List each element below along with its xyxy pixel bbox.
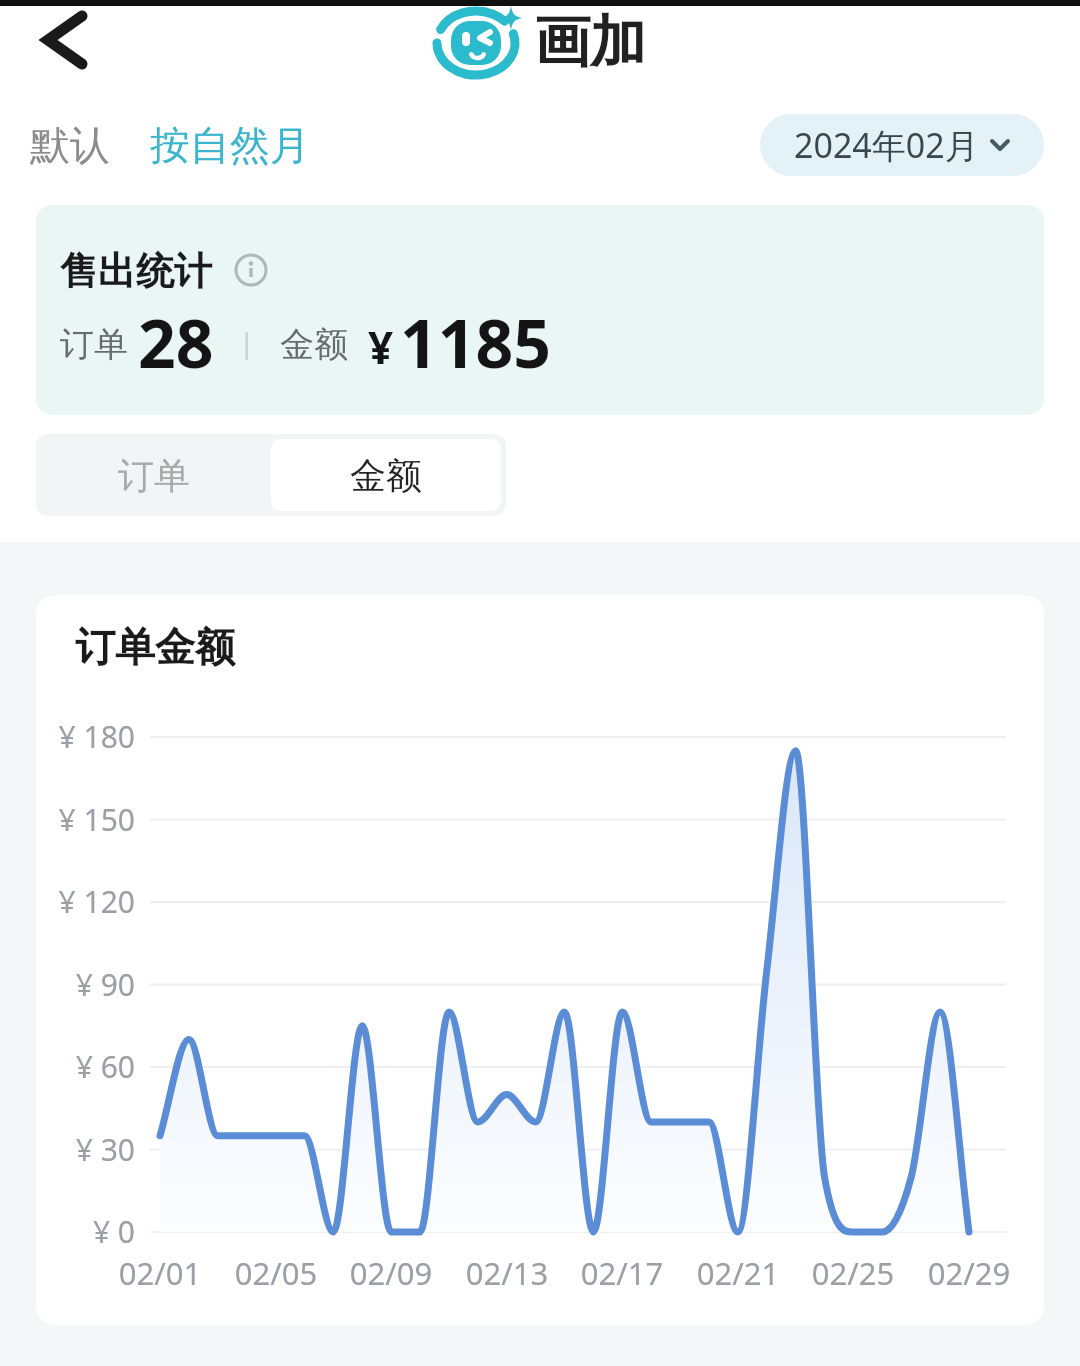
staticText: 1185 <box>400 297 552 387</box>
staticText: 02/05 <box>206 1252 346 1294</box>
staticText: 02/01 <box>90 1252 230 1294</box>
staticText: 金额 <box>280 323 348 366</box>
staticText: ¥ <box>368 317 394 377</box>
staticText: 02/13 <box>437 1252 577 1294</box>
staticText: ¥ 0 <box>30 1211 135 1252</box>
staticText: 订单 <box>118 453 190 498</box>
staticText: | <box>239 323 255 361</box>
staticText: 订单金额 <box>75 622 235 672</box>
staticText: 02/29 <box>899 1252 1039 1294</box>
button[interactable]: 2024年02月 <box>760 114 1044 176</box>
staticText: 02/09 <box>321 1252 461 1294</box>
staticText: 2024年02月 <box>794 122 979 168</box>
staticText: 02/17 <box>552 1252 692 1294</box>
button[interactable]: 订单 <box>36 434 271 516</box>
button[interactable]: 默认 <box>30 120 110 176</box>
staticText: 售出统计 <box>60 247 212 295</box>
staticText: 默认 <box>30 120 110 170</box>
staticText: 02/21 <box>668 1252 808 1294</box>
staticText: 按自然月 <box>150 120 310 170</box>
staticText: ¥ 150 <box>30 799 135 840</box>
staticText: ¥ 90 <box>30 964 135 1005</box>
staticText: ¥ 180 <box>30 716 135 757</box>
staticText: 02/25 <box>783 1252 923 1294</box>
staticText: ¥ 120 <box>30 881 135 922</box>
staticText: 订单 <box>60 323 128 366</box>
staticText: 金额 <box>350 453 422 498</box>
staticText: ¥ 60 <box>30 1046 135 1087</box>
staticText: ¥ 30 <box>30 1129 135 1170</box>
button[interactable] <box>30 8 100 78</box>
button[interactable]: 金额 <box>271 439 501 511</box>
staticText: 28 <box>138 297 214 387</box>
button[interactable]: 按自然月 <box>150 120 310 176</box>
staticText: 画加 <box>534 7 646 78</box>
